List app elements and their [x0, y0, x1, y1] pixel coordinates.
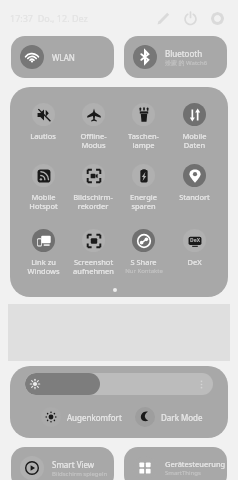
- staticText: Bildschirm spiegeln: [52, 470, 108, 478]
- staticText: Dark Mode: [161, 412, 203, 423]
- staticText: Link zu Windows: [27, 257, 60, 277]
- button[interactable]: Screenshot aufnehmen: [68, 229, 118, 277]
- staticText: SmartThings: [165, 469, 201, 477]
- button[interactable]: Lautlos: [18, 103, 68, 141]
- staticText: Mobile Daten: [182, 131, 207, 151]
- staticText: Smart View: [52, 459, 95, 470]
- staticText: 17:37 Do., 12. Dez: [10, 12, 88, 24]
- button[interactable]: Gerätesteuerung: [124, 447, 227, 480]
- staticText: Screenshot aufnehmen: [73, 257, 114, 277]
- button[interactable]: Augenkomfort: [41, 407, 122, 427]
- button[interactable]: Bearbeiten: [156, 11, 170, 25]
- button[interactable]: Smart View: [11, 447, 114, 480]
- button[interactable]: Bildschirm- rekorder: [68, 164, 118, 212]
- staticText: Energie sparen: [130, 192, 157, 212]
- staticText: DeX: [190, 237, 200, 244]
- button[interactable]: [25, 373, 213, 395]
- staticText: Mobile Hotspot: [29, 192, 58, 212]
- button[interactable]: Link zu Windows: [18, 229, 68, 277]
- staticText: 崇蒙 的 Watch6: [165, 59, 208, 67]
- staticText: Lautlos: [30, 131, 56, 141]
- button[interactable]: Dark Mode: [135, 407, 203, 427]
- staticText: Gerätesteuerung: [165, 459, 226, 469]
- button[interactable]: Offline- Modus: [68, 103, 118, 151]
- button[interactable]: Ausschalten: [183, 11, 197, 25]
- staticText: Augenkomfort: [67, 412, 122, 423]
- button[interactable]: Taschen- lampe: [118, 103, 169, 151]
- button[interactable]: S Share: [118, 229, 169, 275]
- staticText: Taschen- lampe: [128, 131, 159, 151]
- button[interactable]: Energie sparen: [118, 164, 169, 212]
- button[interactable]: Mobile Hotspot: [18, 164, 68, 212]
- staticText: Standort: [179, 192, 210, 202]
- button[interactable]: DeX: [169, 229, 220, 267]
- button[interactable]: Bluetooth: [124, 36, 227, 78]
- staticText: DeX: [187, 257, 202, 267]
- staticText: S Share: [130, 257, 157, 267]
- staticText: Bluetooth: [165, 48, 203, 59]
- staticText: WLAN: [52, 52, 75, 63]
- staticText: Offline- Modus: [80, 131, 107, 151]
- button[interactable]: Standort: [169, 164, 220, 202]
- button[interactable]: Mobile Daten: [169, 103, 220, 151]
- button[interactable]: WLAN: [11, 36, 114, 78]
- button[interactable]: Einstellungen: [210, 11, 224, 25]
- staticText: Nur Kontakte: [125, 267, 163, 275]
- staticText: Bildschirm- rekorder: [73, 192, 113, 212]
